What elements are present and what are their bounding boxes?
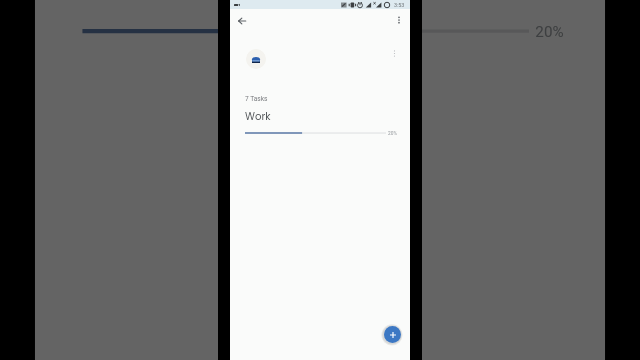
button[interactable]: List options (389, 48, 400, 59)
button[interactable]: Add task (384, 326, 401, 343)
staticText: 20% (388, 131, 397, 137)
button[interactable]: Work list (246, 49, 266, 69)
staticText: 20% (535, 25, 564, 44)
staticText: Work (245, 109, 271, 123)
staticText: 7 Tasks (245, 95, 268, 103)
button[interactable]: Back (234, 13, 249, 28)
button[interactable]: More options (392, 13, 406, 27)
staticText: 3:53 (394, 2, 405, 8)
